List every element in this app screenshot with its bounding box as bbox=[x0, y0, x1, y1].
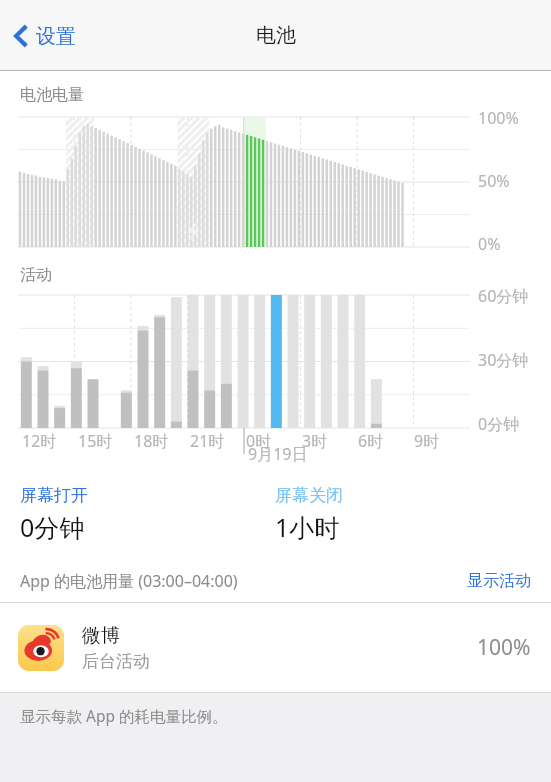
staticText: 0% bbox=[478, 233, 501, 255]
staticText: 21时 bbox=[190, 430, 225, 452]
staticText: 微博 bbox=[82, 624, 120, 648]
staticText: 9时 bbox=[414, 430, 440, 452]
staticText: 0时 bbox=[246, 430, 272, 452]
staticText: 12时 bbox=[22, 430, 57, 452]
staticText: 显示每款 App 的耗电量比例。 bbox=[20, 705, 228, 726]
staticText: 50% bbox=[478, 170, 510, 192]
staticText: 设置 bbox=[36, 24, 76, 49]
staticText: 3时 bbox=[302, 430, 328, 452]
staticText: 6时 bbox=[358, 430, 384, 452]
staticText: 屏幕打开 bbox=[20, 485, 88, 506]
button[interactable]: 设置 bbox=[8, 17, 82, 55]
button[interactable]: 微博 bbox=[0, 603, 551, 692]
staticText: 1小时 bbox=[275, 510, 340, 544]
staticText: 后台活动 bbox=[82, 651, 150, 672]
staticText: 9月19日 bbox=[248, 443, 308, 465]
staticText: 15时 bbox=[78, 430, 113, 452]
staticText: 显示活动 bbox=[467, 571, 531, 591]
staticText: 活动 bbox=[20, 265, 52, 285]
staticText: 电池 bbox=[256, 23, 296, 48]
staticText: 0分钟 bbox=[478, 413, 520, 435]
staticText: 0分钟 bbox=[20, 510, 85, 544]
staticText: 30分钟 bbox=[478, 349, 529, 371]
button[interactable]: 显示活动 bbox=[467, 571, 531, 591]
staticText: 电池电量 bbox=[20, 85, 84, 105]
staticText: 60分钟 bbox=[478, 285, 529, 307]
staticText: 18时 bbox=[134, 430, 169, 452]
staticText: App 的电池用量 (03:00–04:00) bbox=[20, 570, 238, 592]
staticText: 100% bbox=[477, 633, 531, 662]
staticText: 屏幕关闭 bbox=[275, 485, 343, 506]
staticText: 100% bbox=[478, 107, 519, 129]
